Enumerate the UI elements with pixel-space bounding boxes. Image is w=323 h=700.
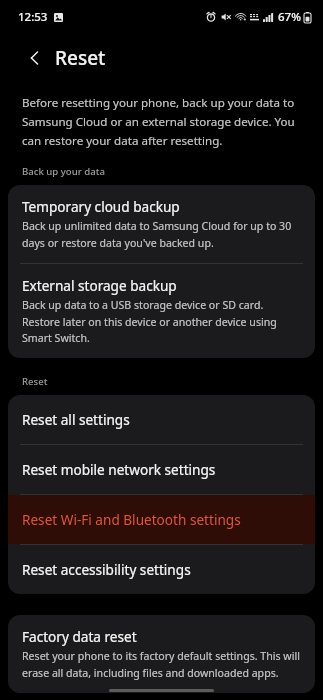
button[interactable]: Reset Wi-Fi and Bluetooth settings — [8, 495, 315, 544]
staticText: Reset mobile network settings — [22, 460, 216, 479]
staticText: Reset your phone to its factory default … — [22, 649, 301, 680]
staticText: 67% — [278, 9, 301, 25]
staticText: Back up your data — [22, 165, 105, 178]
staticText: Reset all settings — [22, 410, 130, 429]
staticText: Reset — [22, 375, 48, 388]
staticText: Back up unlimited data to Samsung Cloud … — [22, 219, 301, 250]
button[interactable]: Factory data reset — [8, 615, 315, 693]
staticText: Back up data to a USB storage device or … — [22, 298, 301, 345]
button[interactable]: Reset accessibility settings — [8, 545, 315, 594]
staticText: Factory data reset — [22, 627, 137, 646]
staticText: Reset Wi-Fi and Bluetooth settings — [22, 510, 241, 529]
staticText: External storage backup — [22, 276, 177, 295]
button[interactable]: Back — [18, 41, 52, 75]
staticText: Temporary cloud backup — [22, 197, 180, 216]
staticText: 12:53 — [18, 9, 48, 25]
staticText: Before resetting your phone, back up you… — [22, 95, 305, 148]
staticText: Reset accessibility settings — [22, 560, 191, 579]
staticText: Reset — [55, 45, 106, 71]
button[interactable]: Reset mobile network settings — [8, 445, 315, 494]
button[interactable]: Reset all settings — [8, 395, 315, 444]
button[interactable]: External storage backup — [8, 264, 315, 358]
button[interactable]: Temporary cloud backup — [8, 185, 315, 263]
